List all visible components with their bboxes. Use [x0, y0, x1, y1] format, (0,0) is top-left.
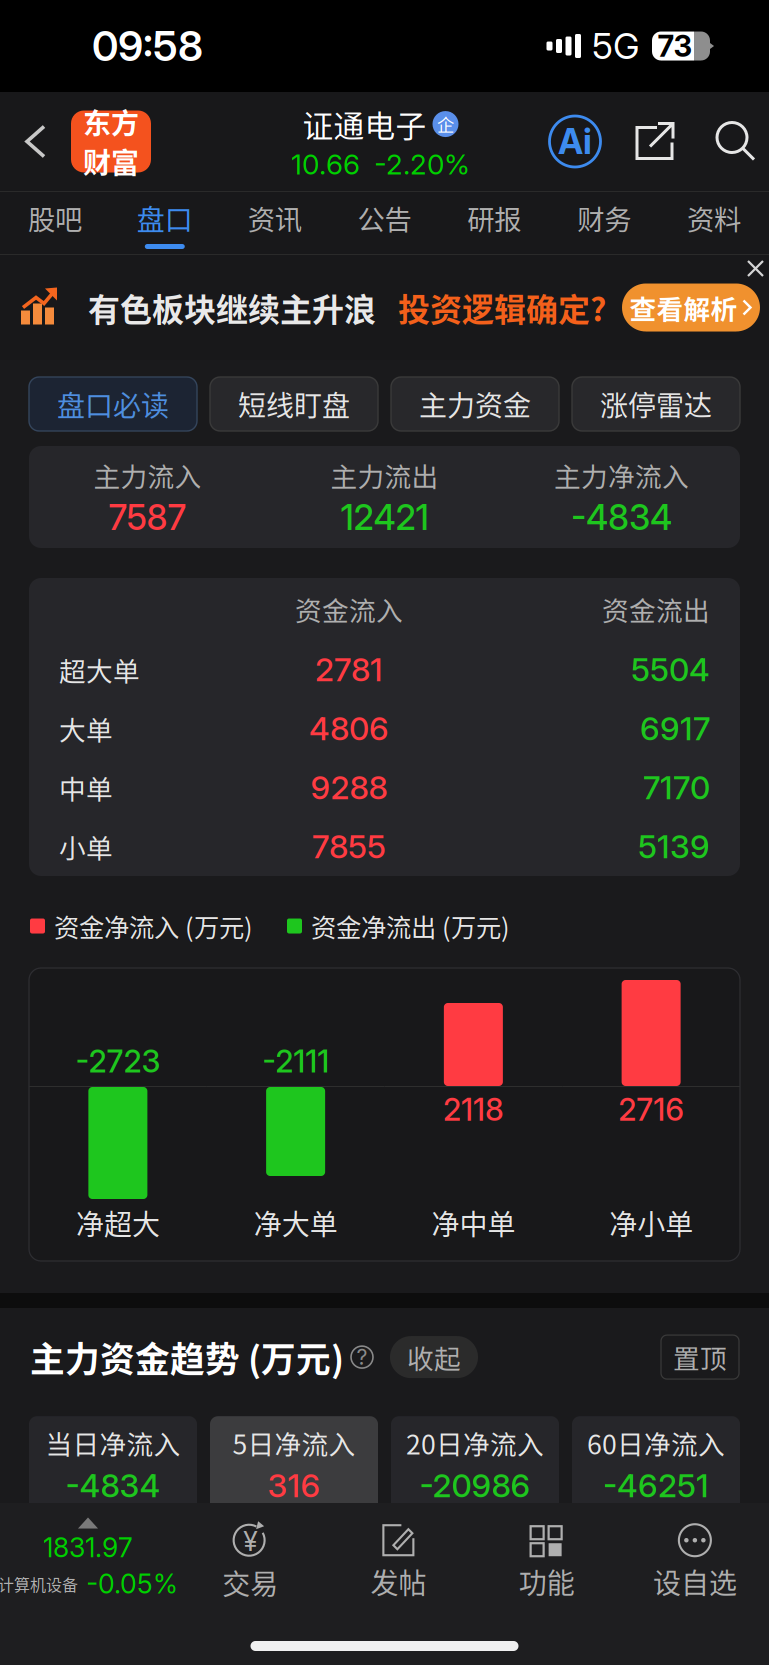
button[interactable]: 查看解析 — [622, 283, 760, 331]
button[interactable]: 20日净流入 — [391, 1416, 559, 1512]
staticText: 查看解析 — [629, 288, 737, 327]
button[interactable]: 置顶 — [661, 1335, 739, 1379]
button[interactable]: 发帖 — [324, 1511, 472, 1611]
staticText: 公告 — [357, 198, 411, 238]
staticText: 收起 — [407, 1338, 461, 1376]
staticText: -4834 — [571, 496, 672, 538]
staticText: 5G — [592, 24, 639, 68]
staticText: 财务 — [577, 198, 631, 238]
staticText: 20日净流入 — [406, 1423, 544, 1462]
button[interactable]: Share — [628, 114, 682, 168]
button[interactable]: 功能 — [472, 1511, 621, 1611]
staticText: 超大单 — [59, 650, 140, 689]
staticText: 2781 — [315, 650, 383, 689]
staticText: 资金流入 — [295, 590, 403, 628]
staticText: ¥ — [243, 1525, 257, 1557]
button[interactable]: 主力资金 — [391, 377, 559, 431]
staticText: 净大单 — [254, 1202, 338, 1243]
staticText: 资讯 — [248, 198, 302, 238]
staticText: 置顶 — [673, 1338, 727, 1376]
staticText: -46251 — [603, 1466, 709, 1505]
staticText: 09:58 — [92, 21, 203, 71]
staticText: 小单 — [59, 827, 113, 866]
staticText: 10.66 — [291, 147, 360, 181]
staticText: 净小单 — [609, 1202, 693, 1243]
button[interactable]: 盘口 — [110, 192, 220, 254]
staticText: 短线盯盘 — [238, 384, 350, 424]
staticText: 资金净流入 (万元) — [54, 908, 253, 944]
staticText: 5139 — [638, 827, 710, 866]
staticText: 计算机设备 — [0, 1572, 78, 1595]
staticText: 功能 — [519, 1561, 575, 1602]
button[interactable]: 短线盯盘 — [210, 377, 378, 431]
staticText: 有色板块继续主升浪 — [88, 284, 376, 331]
button[interactable]: 5日净流入 — [210, 1416, 378, 1512]
staticText: ? — [356, 1344, 367, 1370]
button[interactable]: AI assistant — [548, 114, 602, 168]
staticText: 研报 — [467, 198, 521, 238]
button[interactable]: 公告 — [330, 192, 439, 254]
button[interactable]: 60日净流入 — [572, 1416, 740, 1512]
staticText: 7170 — [643, 768, 710, 807]
button[interactable]: 股吧 — [0, 192, 110, 254]
staticText: 4806 — [309, 709, 389, 748]
staticText: 12421 — [340, 496, 428, 538]
staticText: 主力资金 — [419, 384, 531, 424]
staticText: 2118 — [443, 1091, 504, 1128]
staticText: 73 — [657, 28, 692, 64]
staticText: 1831.97 — [43, 1531, 133, 1564]
staticText: -2723 — [75, 1043, 160, 1080]
staticText: -2111 — [262, 1043, 329, 1080]
staticText: Ai — [558, 120, 592, 162]
button[interactable]: 资讯 — [220, 192, 330, 254]
staticText: 资金净流出 (万元) — [311, 908, 510, 944]
staticText: 主力流出 — [330, 456, 438, 494]
staticText: 股吧 — [28, 198, 82, 238]
staticText: 6917 — [640, 709, 710, 748]
staticText: 当日净流入 — [45, 1423, 180, 1462]
staticText: -2.20% — [374, 147, 470, 181]
button[interactable]: 涨停雷达 — [572, 377, 740, 431]
button[interactable]: 财务 — [549, 192, 659, 254]
staticText: 盘口 — [137, 198, 193, 238]
staticText: 投资逻辑确定? — [398, 284, 606, 331]
staticText: 60日净流入 — [587, 1423, 725, 1462]
staticText: 大单 — [59, 709, 113, 748]
staticText: -4834 — [65, 1466, 160, 1505]
staticText: 中单 — [59, 768, 113, 807]
button[interactable]: Back — [0, 101, 151, 182]
staticText: 5504 — [631, 650, 710, 689]
staticText: 涨停雷达 — [600, 384, 712, 424]
button[interactable]: 资料 — [659, 192, 769, 254]
staticText: 净超大 — [76, 1202, 160, 1243]
staticText: 资金流出 — [602, 590, 710, 628]
staticText: 交易 — [222, 1562, 278, 1603]
staticText: 东方 — [83, 101, 139, 142]
staticText: 净中单 — [431, 1202, 515, 1243]
staticText: 2716 — [618, 1091, 684, 1128]
staticText: 发帖 — [370, 1561, 426, 1602]
staticText: 资料 — [687, 198, 741, 238]
staticText: 盘口必读 — [57, 384, 169, 424]
staticText: 财富 — [83, 141, 139, 181]
button[interactable]: 研报 — [439, 192, 549, 254]
staticText: 5日净流入 — [232, 1423, 355, 1462]
staticText: 企 — [437, 111, 454, 137]
button[interactable]: 设自选 — [621, 1511, 769, 1611]
staticText: -0.05% — [86, 1568, 178, 1600]
button[interactable]: Search — [709, 114, 763, 168]
button[interactable]: Close — [746, 255, 769, 278]
button[interactable]: 盘口必读 — [29, 377, 197, 431]
staticText: 7855 — [312, 827, 386, 866]
staticText: 证通电子 — [302, 102, 426, 146]
staticText: 9288 — [310, 768, 387, 807]
staticText: -20986 — [419, 1466, 530, 1505]
staticText: 316 — [267, 1466, 320, 1505]
button[interactable]: ¥ — [176, 1511, 324, 1611]
button[interactable]: 当日净流入 — [29, 1416, 197, 1512]
staticText: 主力流入 — [93, 456, 201, 494]
staticText: 主力净流入 — [554, 456, 689, 494]
button[interactable]: 收起 — [390, 1336, 478, 1378]
staticText: 主力资金趋势 (万元) — [30, 1332, 344, 1382]
staticText: 设自选 — [653, 1561, 737, 1602]
